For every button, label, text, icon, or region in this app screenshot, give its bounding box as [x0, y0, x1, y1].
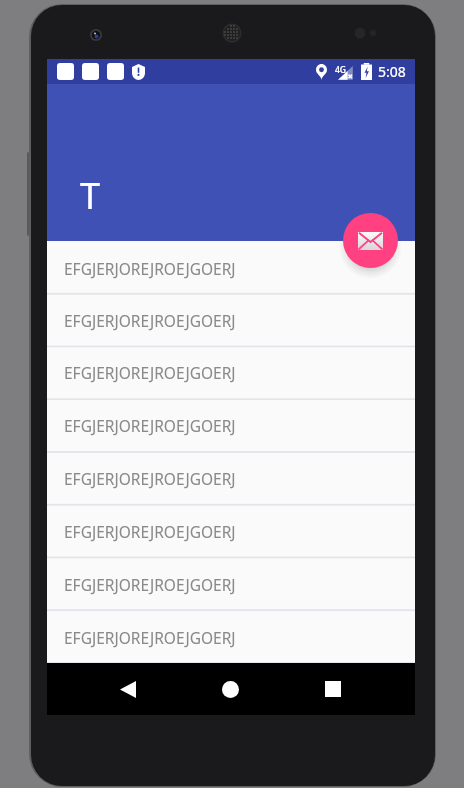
- staticText: 4G: [335, 64, 347, 76]
- staticText: EFGJERJOREJROEJGOERJ: [64, 258, 236, 279]
- staticText: EFGJERJOREJROEJGOERJ: [64, 362, 236, 383]
- staticText: EFGJERJOREJROEJGOERJ: [64, 521, 236, 542]
- button[interactable]: Home: [207, 663, 254, 715]
- button[interactable]: EFGJERJOREJROEJGOERJ: [47, 293, 415, 345]
- button[interactable]: EFGJERJOREJROEJGOERJ: [47, 345, 415, 398]
- button[interactable]: EFGJERJOREJROEJGOERJ: [47, 451, 415, 504]
- staticText: EFGJERJOREJROEJGOERJ: [64, 574, 236, 595]
- staticText: EFGJERJOREJROEJGOERJ: [64, 415, 236, 436]
- button[interactable]: EFGJERJOREJROEJGOERJ: [47, 610, 415, 663]
- button[interactable]: EFGJERJOREJROEJGOERJ: [47, 398, 415, 451]
- staticText: 5:08: [378, 62, 406, 81]
- button[interactable]: EFGJERJOREJROEJGOERJ: [47, 557, 415, 610]
- staticText: EFGJERJOREJROEJGOERJ: [64, 468, 236, 489]
- button[interactable]: Back: [104, 663, 151, 715]
- button[interactable]: EFGJERJOREJROEJGOERJ: [47, 241, 415, 293]
- staticText: EFGJERJOREJROEJGOERJ: [64, 310, 236, 331]
- staticText: EFGJERJOREJROEJGOERJ: [64, 627, 236, 648]
- button[interactable]: Compose email: [343, 213, 398, 268]
- staticText: T: [80, 171, 101, 220]
- button[interactable]: EFGJERJOREJROEJGOERJ: [47, 504, 415, 557]
- button[interactable]: Recents: [309, 663, 356, 715]
